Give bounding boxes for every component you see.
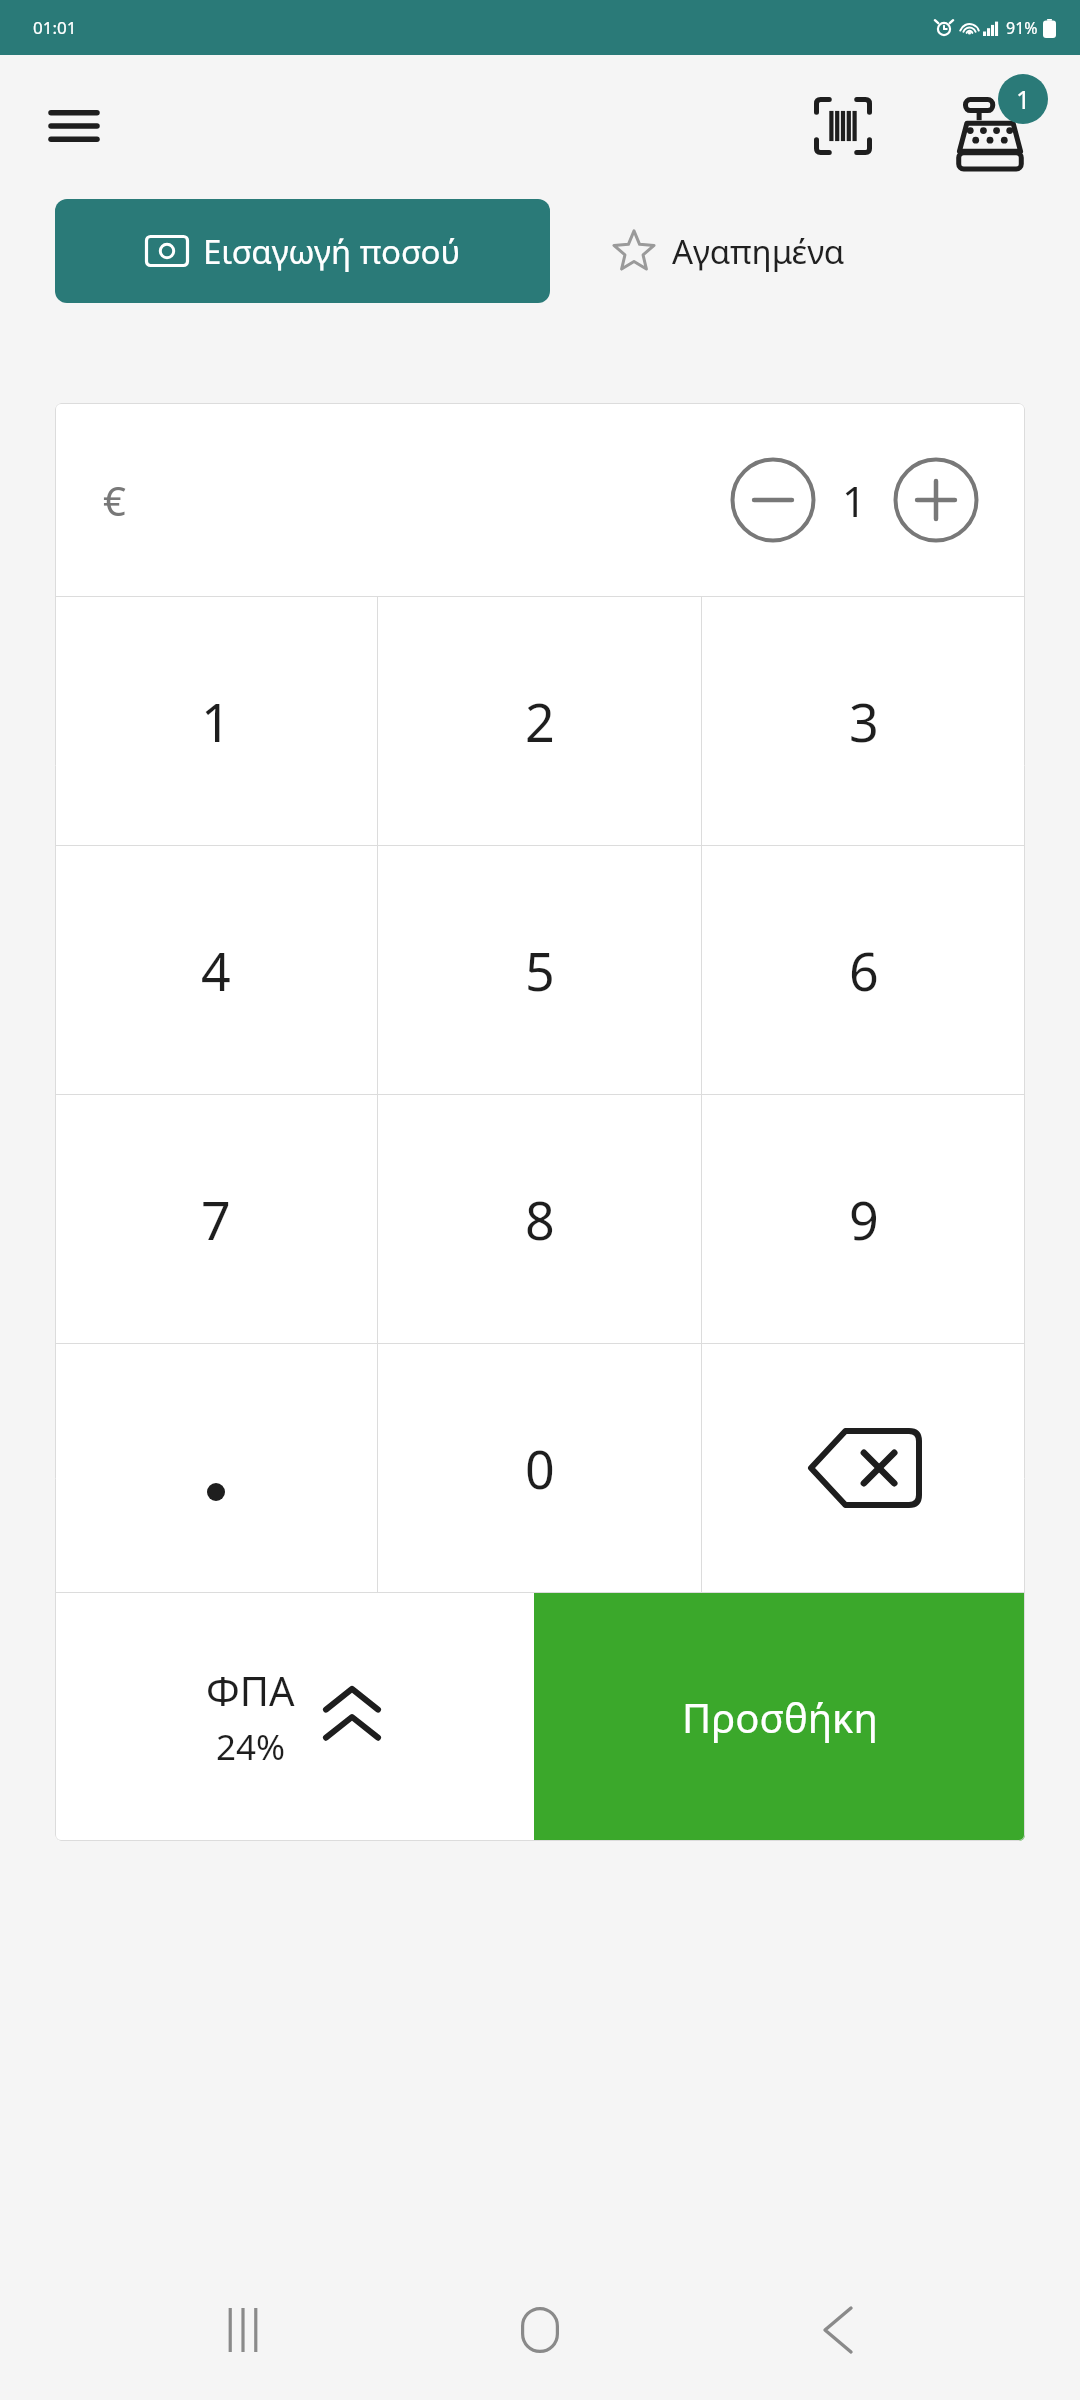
staticText: € xyxy=(103,473,126,527)
staticText: 01:01 xyxy=(33,16,77,39)
staticText: 3 xyxy=(849,686,879,757)
button[interactable]: Home xyxy=(485,2275,595,2385)
staticText: 5 xyxy=(525,935,555,1006)
staticText: 2 xyxy=(525,686,555,757)
staticText: 0 xyxy=(525,1433,555,1504)
staticText: Αγαπημένα xyxy=(672,229,845,274)
button[interactable]: 7 xyxy=(55,1095,377,1343)
button[interactable]: ΦΠΑ xyxy=(55,1593,534,1841)
staticText: Εισαγωγή ποσού xyxy=(203,229,461,274)
button[interactable]: Menu xyxy=(43,95,105,157)
button[interactable] xyxy=(55,1344,377,1592)
button[interactable]: Scan barcode xyxy=(804,87,882,165)
button[interactable]: 5 xyxy=(378,846,701,1094)
staticText: 7 xyxy=(201,1184,231,1255)
button[interactable]: 8 xyxy=(378,1095,701,1343)
button[interactable]: 3 xyxy=(702,597,1025,845)
staticText: 91% xyxy=(1006,17,1038,39)
staticText: 1 xyxy=(1016,82,1031,116)
button[interactable]: Backspace xyxy=(702,1344,1025,1592)
button[interactable]: Increase xyxy=(893,457,979,543)
button[interactable]: Αγαπημένα xyxy=(612,199,845,303)
button[interactable]: Decrease xyxy=(730,457,816,543)
button[interactable]: 9 xyxy=(702,1095,1025,1343)
button[interactable]: Προσθήκη xyxy=(534,1593,1025,1841)
button[interactable]: 6 xyxy=(702,846,1025,1094)
staticText: 1 xyxy=(201,686,231,757)
staticText: 24% xyxy=(216,1723,286,1771)
button[interactable]: Cart xyxy=(952,80,1044,172)
button[interactable]: Εισαγωγή ποσού xyxy=(55,199,550,303)
staticText: Προσθήκη xyxy=(682,1690,878,1744)
button[interactable]: 2 xyxy=(378,597,701,845)
staticText: 1 xyxy=(842,472,867,529)
button[interactable]: 0 xyxy=(378,1344,701,1592)
staticText: 4 xyxy=(201,935,231,1006)
staticText: 6 xyxy=(849,935,879,1006)
staticText: 9 xyxy=(849,1184,879,1255)
button[interactable]: Recents xyxy=(188,2275,298,2385)
button[interactable]: 4 xyxy=(55,846,377,1094)
button[interactable]: 1 xyxy=(55,597,377,845)
button[interactable]: Back xyxy=(783,2275,893,2385)
staticText: 8 xyxy=(525,1184,555,1255)
staticText: ΦΠΑ xyxy=(206,1663,295,1717)
